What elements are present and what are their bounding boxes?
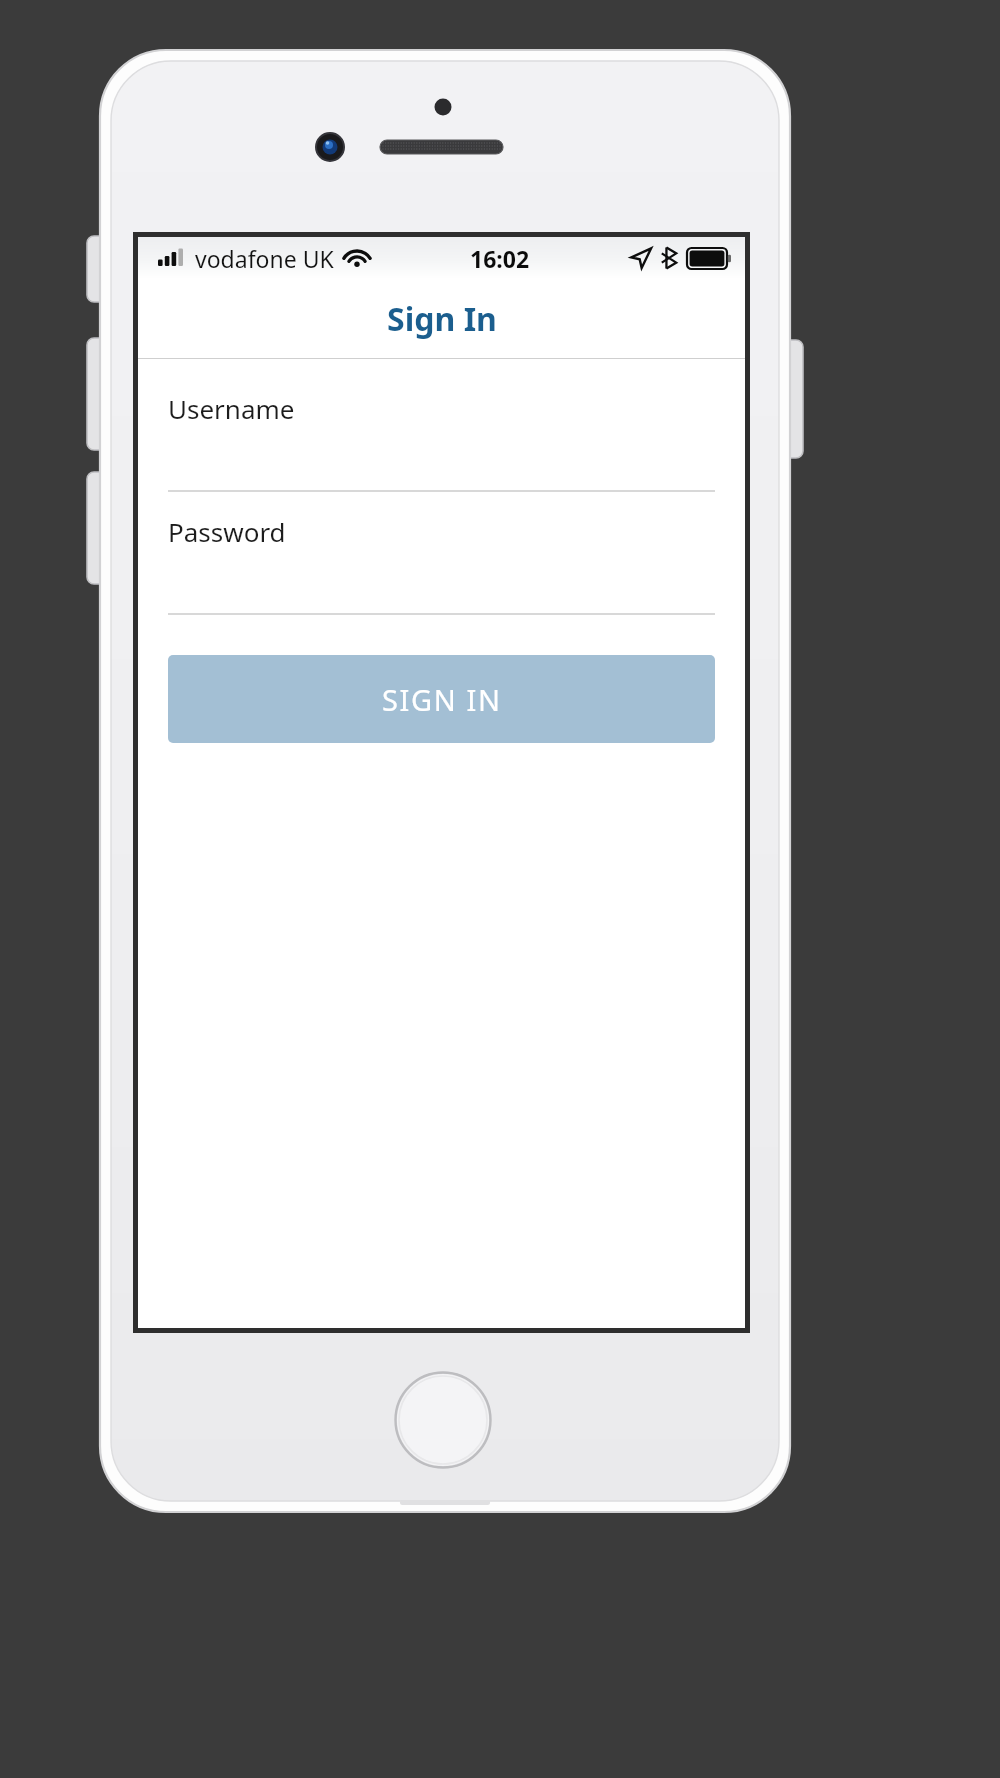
staticText: SIGN IN [382,680,502,719]
button[interactable]: Password [138,492,745,615]
button[interactable]: Sign In [168,655,715,743]
staticText: Sign In [387,297,497,341]
staticText: Password [168,514,286,549]
button[interactable]: Username [138,369,745,492]
staticText: 16:02 [470,243,530,274]
staticText: Username [168,391,295,426]
staticText: vodafone UK [195,243,334,274]
